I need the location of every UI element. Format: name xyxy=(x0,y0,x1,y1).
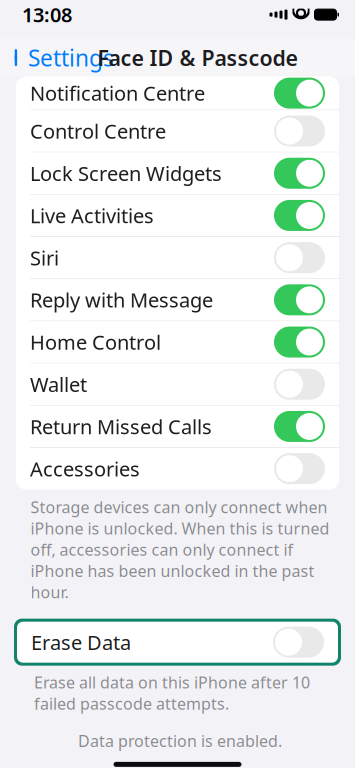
button[interactable]: Erase Data xyxy=(14,619,341,666)
button[interactable]: Notification Centre xyxy=(16,77,339,110)
staticText: Home Control xyxy=(30,329,161,355)
staticText: Lock Screen Widgets xyxy=(30,160,222,187)
staticText: Erase Data xyxy=(31,629,131,655)
staticText: Data protection is enabled. xyxy=(78,730,282,751)
staticText: Live Activities xyxy=(30,202,154,229)
button[interactable]: Accessories xyxy=(16,448,339,489)
button[interactable]: Live Activities xyxy=(16,195,339,237)
button[interactable]: Reply with Message xyxy=(16,279,339,321)
button[interactable]: Home Control xyxy=(16,321,339,363)
button[interactable]: Wallet xyxy=(16,363,339,406)
staticText: Wallet xyxy=(30,371,87,398)
staticText: Control Centre xyxy=(30,118,166,144)
button[interactable]: Control Centre xyxy=(16,110,339,152)
button[interactable]: Settings xyxy=(0,40,122,76)
staticText: 13:08 xyxy=(22,1,72,28)
staticText: Erase all data on this iPhone after 10 f… xyxy=(34,672,310,714)
button[interactable]: Siri xyxy=(16,237,339,279)
staticText: Siri xyxy=(30,244,59,271)
staticText: Notification Centre xyxy=(30,80,205,106)
staticText: Settings xyxy=(28,43,114,73)
staticText: Reply with Message xyxy=(30,287,213,313)
button[interactable]: Return Missed Calls xyxy=(16,406,339,448)
staticText: Return Missed Calls xyxy=(30,413,212,440)
staticText: Accessories xyxy=(30,455,140,482)
staticText: Storage devices can only connect when iP… xyxy=(30,496,329,603)
staticText: Face ID & Passcode xyxy=(97,43,297,72)
button[interactable]: Lock Screen Widgets xyxy=(16,152,339,195)
